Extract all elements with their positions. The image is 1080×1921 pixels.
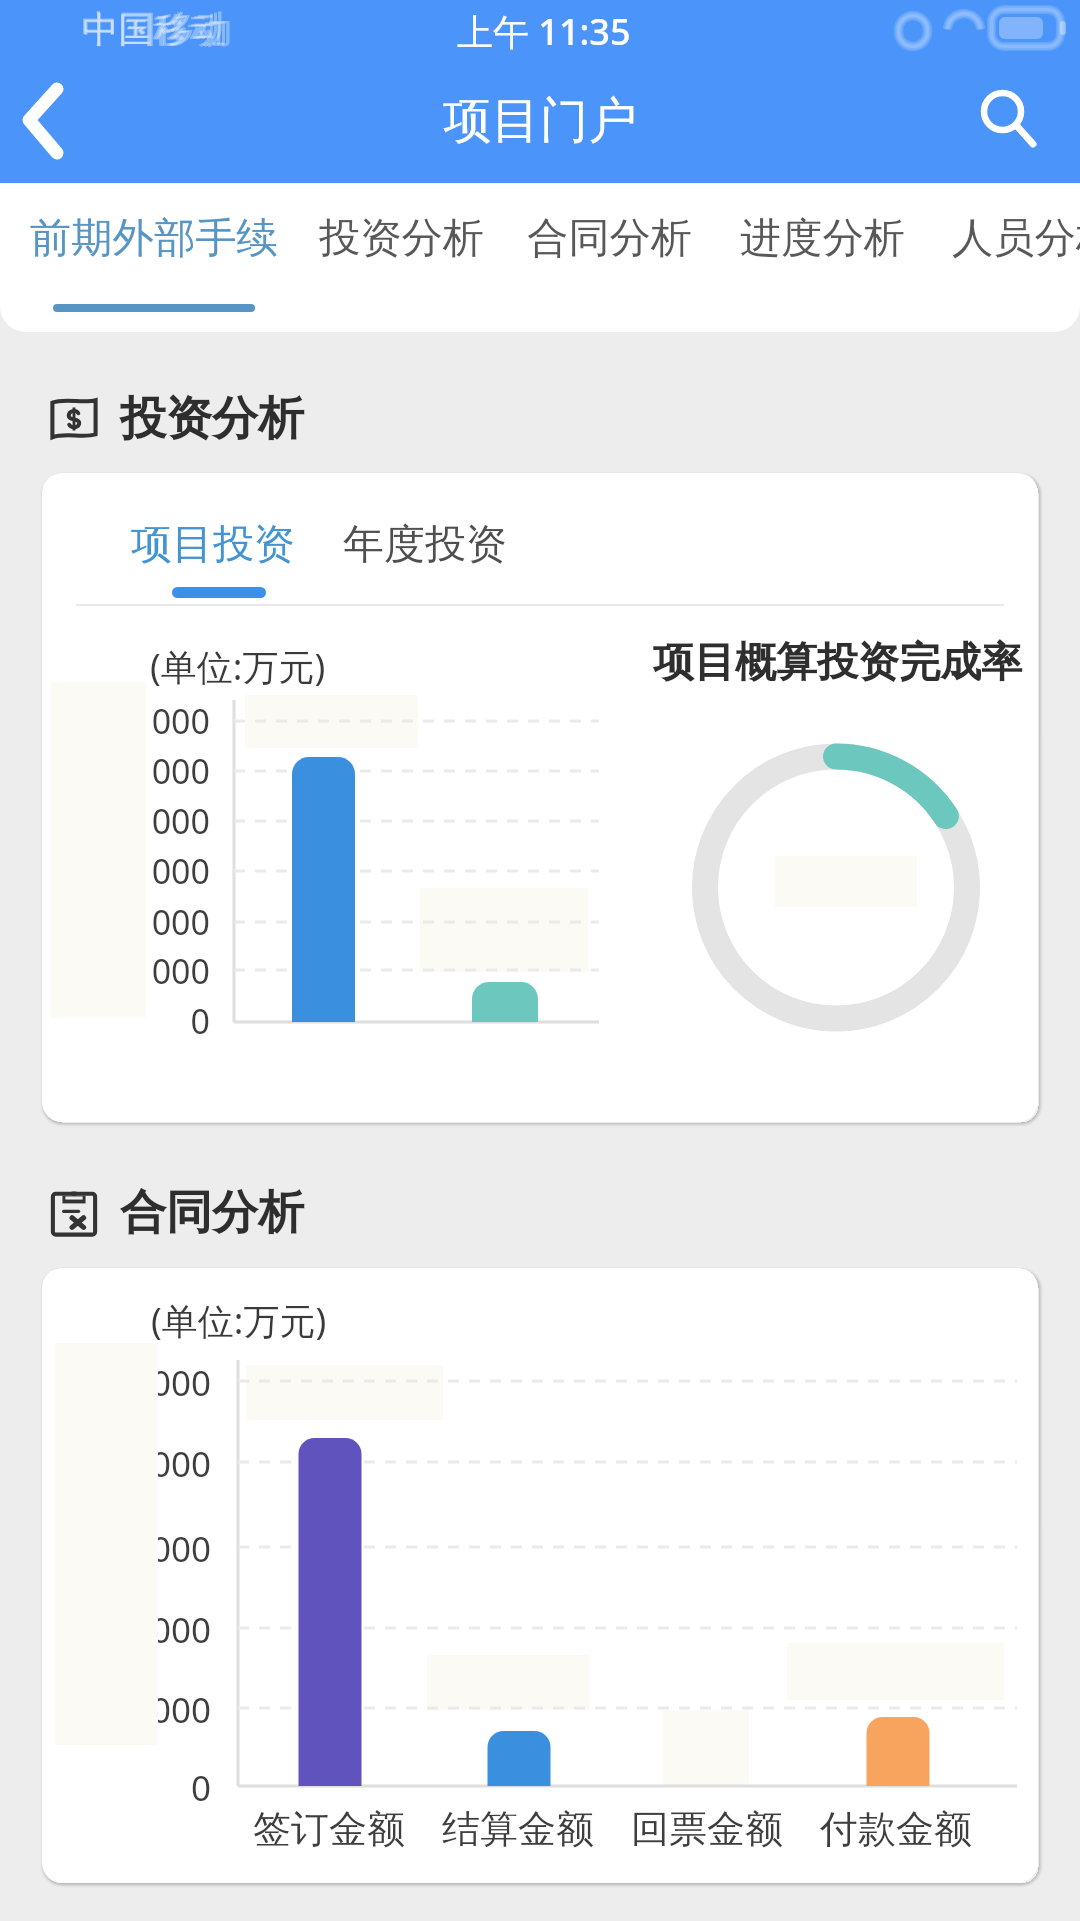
- staticText: 000: [91, 1606, 211, 1654]
- staticText: 0: [91, 1764, 211, 1812]
- staticText: 中国移动: [83, 8, 223, 52]
- button[interactable]: 项目投资: [131, 519, 295, 597]
- staticText: 000: [90, 748, 210, 794]
- staticText: 项目概算投资完成率: [653, 637, 1022, 689]
- staticText: 000: [91, 1440, 211, 1488]
- staticText: 付款金额: [820, 1805, 1020, 1853]
- button[interactable]: 人员分析: [952, 183, 1080, 332]
- staticText: 000: [91, 1359, 211, 1407]
- button[interactable]: 前期外部手续: [30, 183, 278, 332]
- button[interactable]: 合同分析: [50, 1184, 304, 1242]
- staticText: 中国移动: [82, 7, 228, 53]
- staticText: 前期外部手续: [30, 212, 278, 264]
- staticText: 投资分析: [120, 390, 304, 448]
- button[interactable]: 年度投资: [343, 519, 507, 597]
- staticText: 000: [90, 798, 210, 844]
- staticText: (单位:万元): [150, 642, 326, 691]
- staticText: 合同分析: [527, 212, 692, 264]
- button[interactable]: Back: [0, 57, 110, 183]
- staticText: 000: [90, 948, 210, 994]
- staticText: 000: [90, 899, 210, 945]
- staticText: 投资分析: [319, 212, 484, 264]
- staticText: 结算金额: [442, 1805, 642, 1853]
- button[interactable]: 投资分析: [50, 390, 304, 448]
- button[interactable]: 投资分析: [319, 183, 484, 332]
- staticText: 年度投资: [343, 519, 507, 571]
- staticText: 000: [91, 1686, 211, 1734]
- staticText: 回票金额: [631, 1805, 831, 1853]
- staticText: (单位:万元): [151, 1296, 327, 1345]
- staticText: 合同分析: [120, 1184, 304, 1242]
- staticText: 签订金额: [253, 1805, 453, 1853]
- button[interactable]: 合同分析: [527, 183, 692, 332]
- staticText: 上午 11:35: [457, 7, 631, 56]
- staticText: 人员分析: [952, 212, 1080, 264]
- staticText: 项目门户: [443, 90, 637, 151]
- staticText: 000: [90, 848, 210, 894]
- staticText: 0: [90, 998, 210, 1044]
- button[interactable]: 进度分析: [740, 183, 905, 332]
- staticText: 进度分析: [740, 212, 905, 264]
- staticText: 项目投资: [131, 519, 295, 571]
- staticText: 000: [90, 698, 210, 744]
- button[interactable]: Search: [950, 57, 1080, 183]
- staticText: 000: [91, 1525, 211, 1573]
- staticText: 中国移动: [81, 6, 233, 54]
